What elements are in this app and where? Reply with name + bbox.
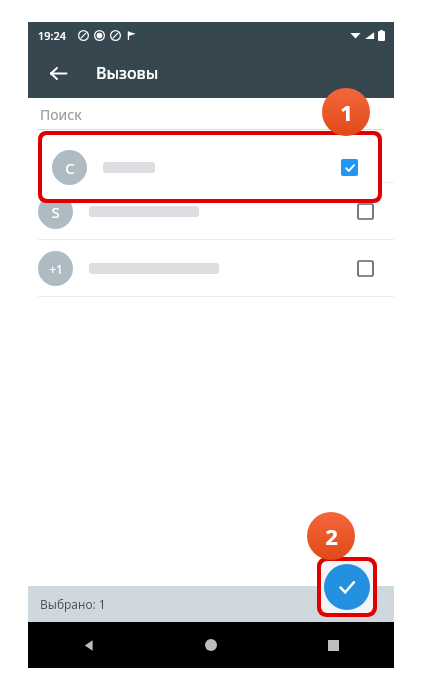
staticText: C <box>51 147 61 167</box>
staticText: Выбрано: 1 <box>40 596 106 612</box>
button[interactable]: +1 <box>28 240 394 296</box>
button[interactable]: Не выбрано <box>350 253 380 283</box>
staticText: C <box>65 158 75 178</box>
button[interactable]: Назад <box>28 622 150 668</box>
staticText: Вызовы <box>96 62 159 84</box>
staticText: Поиск <box>40 105 82 124</box>
staticText: S <box>51 202 60 222</box>
button[interactable]: Не выбрано <box>350 196 380 226</box>
staticText: 19:24 <box>38 28 67 43</box>
button[interactable]: Подтвердить <box>324 564 370 610</box>
staticText: 1 <box>340 97 353 127</box>
button[interactable]: C <box>42 135 378 199</box>
button[interactable]: Главный экран <box>150 622 272 668</box>
button[interactable]: Выбрано <box>334 152 364 182</box>
button[interactable]: Обзор <box>272 622 394 668</box>
button[interactable]: Назад <box>42 57 74 89</box>
staticText: +1 <box>49 261 63 277</box>
staticText: 2 <box>325 521 338 551</box>
button[interactable]: S <box>28 183 394 239</box>
button[interactable]: Поиск <box>28 98 394 130</box>
button[interactable]: Подтвердить выбор <box>324 564 370 610</box>
button[interactable]: Выбрано <box>350 141 380 171</box>
button[interactable]: C <box>28 130 394 182</box>
